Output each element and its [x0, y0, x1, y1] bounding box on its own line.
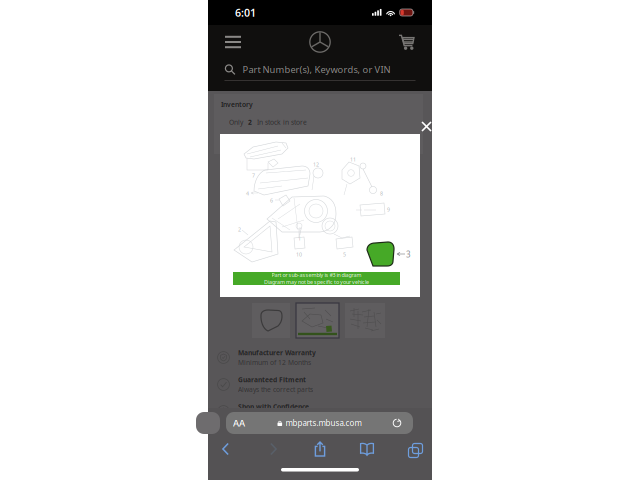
staticText: Only [229, 118, 243, 127]
staticText: Guaranteed Fitment [238, 375, 306, 384]
staticText: 4 [246, 190, 249, 197]
staticText: 9 [387, 206, 390, 213]
button[interactable]: Bookmarks [355, 439, 379, 459]
staticText: 10 [296, 251, 302, 258]
staticText: 2 [248, 118, 252, 127]
staticText: 1 [298, 235, 301, 242]
button[interactable]: Back [213, 439, 237, 459]
button[interactable]: Diagram 1, selected [296, 303, 339, 338]
button[interactable]: Share [308, 439, 332, 459]
staticText: Always the correct parts [238, 385, 313, 394]
button[interactable]: Part photo [252, 303, 290, 338]
staticText: Secure checkout [238, 412, 290, 421]
staticText: In stock in store [257, 118, 307, 127]
staticText: 7 [252, 172, 255, 179]
staticText: Diagram may not be specific to your vehi… [264, 278, 369, 286]
button[interactable]: Address: mbparts.mbusa.com [226, 412, 413, 434]
staticText: 5 [343, 251, 346, 258]
staticText: AA [233, 417, 245, 429]
staticText: 6 [270, 197, 273, 204]
staticText: Part Number(s), Keywords, or VIN [242, 63, 390, 76]
staticText: Minimum of 12 Months [238, 358, 311, 367]
button[interactable]: Menu [218, 27, 248, 57]
button[interactable]: Cart [392, 27, 422, 57]
staticText: 8 [380, 190, 383, 197]
staticText: 6:01 [235, 5, 256, 20]
button[interactable]: Tabs [401, 439, 425, 459]
button[interactable]: Forward [261, 439, 285, 459]
button[interactable]: Mercedes-Benz home [307, 29, 333, 55]
button[interactable]: Close [420, 120, 433, 133]
staticText: Shop with Confidence [238, 402, 309, 411]
staticText: Inventory [221, 100, 253, 109]
staticText: mbparts.mbusa.com [285, 418, 361, 428]
button[interactable]: Search [208, 59, 432, 91]
staticText: Part or sub-assembly is #3 in diagram [271, 271, 361, 278]
staticText: 2 [238, 226, 241, 233]
staticText: 11 [350, 156, 356, 163]
staticText: Manufacturer Warranty [238, 348, 316, 357]
staticText: 12 [313, 161, 319, 168]
staticText: 3 [406, 249, 411, 260]
